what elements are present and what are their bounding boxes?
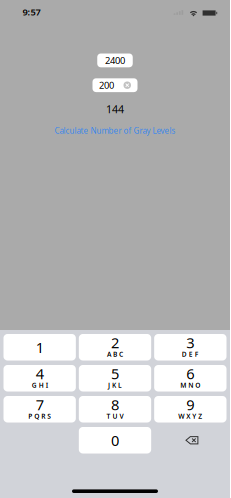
staticText: 9 [186,395,194,414]
staticText: 9:57 [23,6,41,18]
staticText: 3 [186,333,194,352]
staticText: 1 [36,337,44,357]
staticText: 2400 [105,54,125,67]
staticText: 7 [36,395,44,414]
button[interactable]: 3 [154,334,226,360]
button[interactable]: Delete [154,427,226,453]
staticText: T U V [106,412,123,421]
staticText: G H I [32,381,48,390]
button[interactable]: 8 [79,396,151,422]
button[interactable]: 7 [3,396,76,422]
button[interactable]: 2 [79,334,151,360]
button[interactable]: 0 [79,427,151,453]
button[interactable]: Clear text [123,81,131,89]
button[interactable]: 9 [154,396,226,422]
staticText: 4 [36,364,44,383]
staticText: P Q R S [28,412,51,421]
staticText: 6 [186,364,194,383]
staticText: D E F [182,350,199,359]
staticText: 2 [111,333,119,352]
button[interactable]: 1 [3,334,76,360]
staticText: 8 [111,395,119,414]
staticText: M N O [180,381,200,390]
staticText: A B C [107,350,123,359]
button[interactable]: 5 [79,365,151,391]
button[interactable]: 4 [3,365,76,391]
staticText: J K L [108,381,122,390]
staticText: 0 [111,430,119,450]
staticText: 200 [99,79,114,91]
staticText: 5 [111,364,119,383]
staticText: 144 [106,102,124,116]
button[interactable]: 6 [154,365,226,391]
button[interactable]: Calculate Number of Gray Levels [54,125,175,136]
staticText: Calculate Number of Gray Levels [54,125,175,136]
staticText: W X Y Z [178,412,202,421]
